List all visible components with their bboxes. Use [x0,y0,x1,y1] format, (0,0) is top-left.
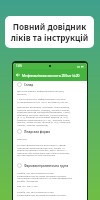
button[interactable]: Повний довідник [5,16,94,48]
staticText: засоби. Фенамати. [17,179,39,182]
staticText: Лікарська форма [24,130,51,134]
staticText: гліколь, амонію гідроксид). [17,123,49,126]
staticText: кришечка жовтого кольору; вміст капсул — [17,148,68,151]
staticText: ліків та інструкцій [5,32,94,43]
staticText: (Е 171), барвник хіноліновий жовтий (Е 1… [17,115,69,118]
button[interactable]: Back [15,72,21,78]
staticText: 1:06 [16,64,22,68]
staticText: лактози моногідрат, повідон, магнію стеа… [17,108,70,111]
staticText: Основні фізико-хімічні властивості: твер… [17,143,66,146]
staticText: непрозорі желатинові капсули, корпус та [17,146,65,149]
staticText: Склад [24,83,34,87]
staticText: Код АТХ М01А G01. [17,184,39,187]
staticText: кислота; [17,92,27,95]
staticText: Засоби, що застосовуються при [17,171,54,174]
staticText: діюча речовина: мефенамінова кислота; [17,89,65,92]
staticText: порошок або ущільнена маса білого кольор… [17,151,71,154]
staticText: оболонка капсули: желатин, титану діокси… [17,113,68,116]
staticText: Мефенамінова кислота 250мг №20 ОК-ДЕ.. [22,73,85,78]
staticText: (шелак, заліза оксид чорний (Е 172), про… [17,120,71,123]
staticText: Повний довідник [5,21,94,32]
staticText: що розпадається при натисканні. [17,153,56,156]
staticText: Фармакотерапевтична група [24,164,69,168]
staticText: кремнію діоксид колоїдний безводний, тал… [17,110,71,113]
staticText: допоміжні речовини: крохмаль картопляний… [17,105,70,108]
staticText: захворюваннях кістково-м'язової системи. [17,174,67,177]
staticText: Нестероїдні протизапальні та протиревмат… [17,176,73,179]
staticText: 1 капсула містить мефенамінової кислоти [17,97,66,100]
staticText: барвник індигокармін (Е 132); чорнило чо… [17,118,70,121]
staticText: Засоби, що застосовуються при [17,190,54,193]
staticText: захворюваннях кістково-м'язової системи. [17,193,67,196]
staticText: (у перерахуванні на 100 % речовину) 250 … [17,100,69,103]
staticText: Капсули. [17,137,28,140]
